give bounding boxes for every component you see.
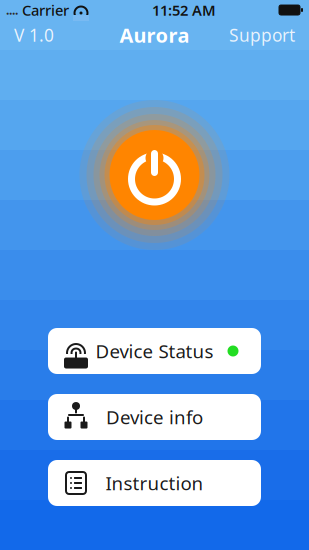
staticText: 11:52 AM (152, 0, 216, 20)
staticText: Aurora (119, 22, 189, 48)
button[interactable]: Device Status (48, 328, 261, 374)
staticText: .... (6, 2, 18, 18)
staticText: Carrier (18, 0, 69, 20)
button[interactable]: Power (79, 100, 229, 250)
staticText: Device Status (95, 339, 213, 363)
staticText: Device info (106, 405, 203, 429)
button[interactable]: Support (219, 17, 305, 52)
staticText: Instruction (105, 471, 203, 495)
staticText: Support (229, 23, 295, 46)
staticText: V 1.0 (14, 23, 54, 46)
button[interactable]: V 1.0 (4, 17, 64, 52)
button[interactable]: Instruction (48, 460, 261, 506)
button[interactable]: Device info (48, 394, 261, 440)
